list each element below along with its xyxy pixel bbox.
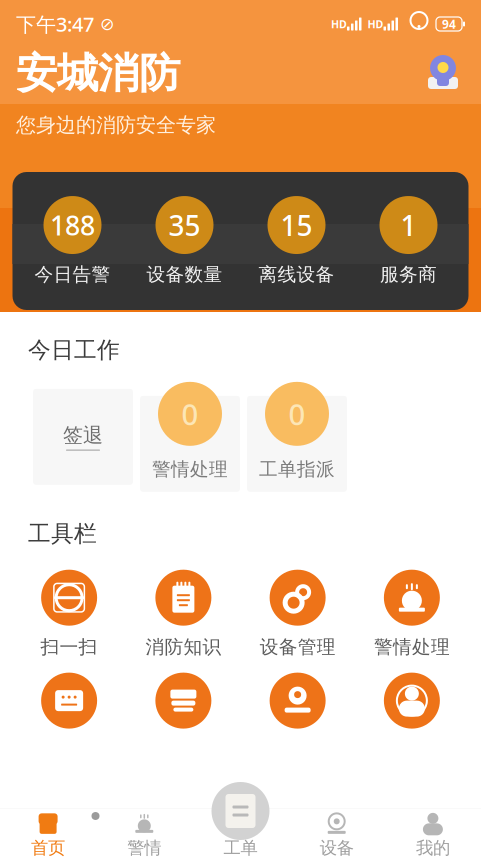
button[interactable]: 扫一扫 [12, 570, 126, 659]
button[interactable]: 设备管理 [240, 570, 355, 659]
button[interactable]: 工具 [12, 673, 126, 729]
staticText: ⊘ [94, 14, 115, 34]
button[interactable]: 工具 [355, 673, 469, 729]
staticText: 1 [400, 206, 416, 244]
button[interactable]: 工具 [126, 673, 240, 729]
button[interactable]: 首页 [0, 807, 96, 858]
button[interactable]: 工具 [240, 673, 355, 729]
button[interactable]: 0 [247, 382, 347, 492]
staticText: 下午3:47 [16, 11, 94, 37]
button[interactable]: 签退 [33, 389, 133, 485]
staticText: 工单指派 [259, 458, 335, 481]
button[interactable]: 0 [140, 382, 240, 492]
staticText: 服务商 [380, 263, 437, 286]
button[interactable]: 188 [16, 182, 128, 300]
button[interactable]: 警情 [96, 807, 192, 858]
staticText: 扫一扫 [41, 636, 98, 659]
button[interactable]: 工单 [211, 782, 269, 840]
button[interactable]: 定位 [421, 50, 465, 94]
button[interactable]: 设备 [289, 807, 385, 858]
staticText: 工单 [223, 837, 257, 858]
button[interactable]: 消防知识 [126, 570, 240, 659]
button[interactable]: 35 [128, 182, 240, 300]
staticText: 离线设备 [258, 263, 334, 286]
staticText: 安城消防 [16, 48, 180, 99]
staticText: 警情处理 [374, 636, 450, 659]
staticText: HD [331, 17, 347, 31]
staticText: 警情 [127, 837, 161, 858]
staticText: 188 [50, 207, 95, 243]
staticText: 消防知识 [145, 636, 221, 659]
staticText: 设备数量 [146, 263, 222, 286]
button[interactable]: 15 [240, 182, 352, 300]
staticText: 0 [288, 394, 305, 433]
staticText: 签退 [63, 423, 103, 448]
staticText: 设备 [320, 837, 354, 858]
staticText: 您身边的消防安全专家 [16, 113, 216, 137]
staticText: 我的 [416, 837, 450, 858]
staticText: 今日工作 [28, 336, 120, 364]
button[interactable]: 工单 [192, 807, 289, 858]
button[interactable]: 我的 [385, 807, 481, 858]
staticText: 首页 [31, 837, 65, 858]
staticText: 35 [168, 206, 200, 244]
staticText: 0 [181, 394, 198, 433]
staticText: 工具栏 [28, 520, 97, 548]
button[interactable]: 警情处理 [355, 570, 469, 659]
staticText: 15 [280, 206, 312, 244]
staticText: 设备管理 [260, 636, 336, 659]
staticText: 94 [442, 16, 456, 32]
staticText: 警情处理 [152, 458, 228, 481]
staticText: 今日告警 [34, 263, 110, 286]
button[interactable]: 1 [352, 182, 464, 300]
staticText: HD [367, 17, 383, 31]
